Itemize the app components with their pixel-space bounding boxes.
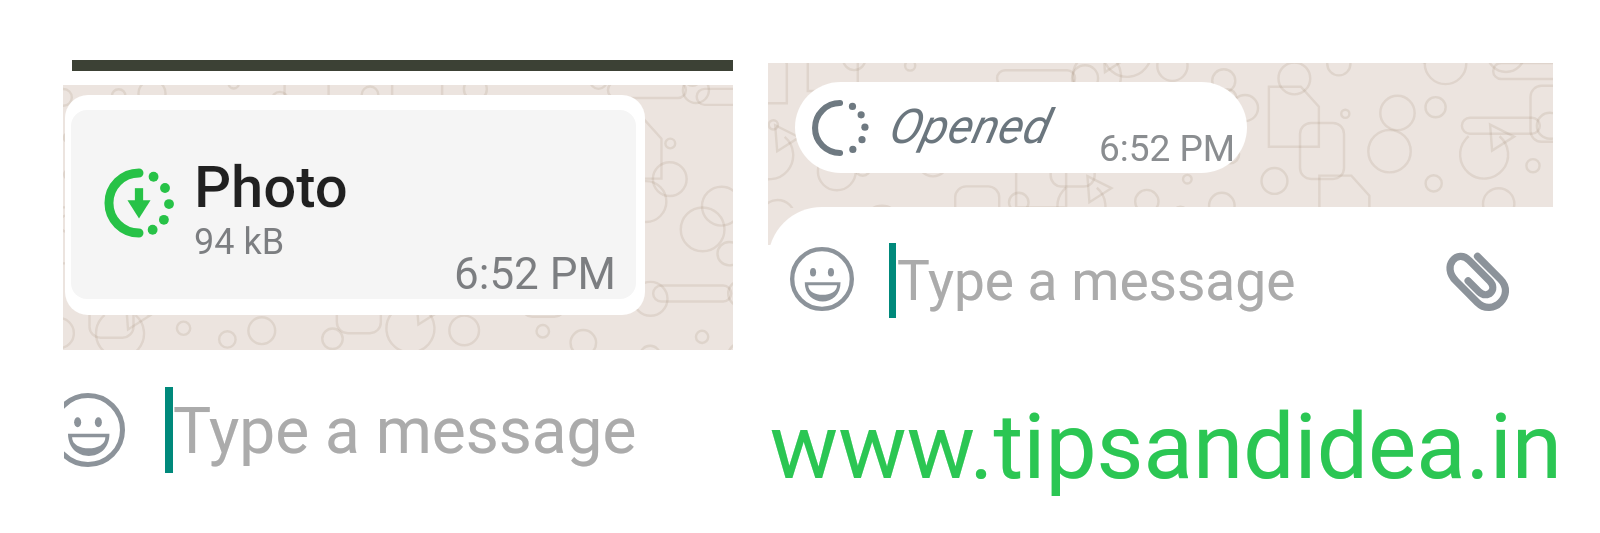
button[interactable]: Emoji: [790, 247, 854, 311]
staticText: Photo: [194, 153, 348, 221]
button[interactable]: Emoji: [64, 393, 125, 468]
button[interactable]: Opened: [795, 82, 1247, 173]
staticText: 6:52 PM: [1099, 127, 1236, 170]
staticText: 6:52 PM: [454, 248, 616, 299]
button[interactable]: Attach: [1443, 245, 1519, 321]
staticText: Opened: [887, 98, 1047, 154]
staticText: 94 kB: [194, 221, 285, 263]
staticText: Type a message: [897, 249, 1296, 313]
staticText: www.tipsandidea.in: [756, 394, 1576, 501]
staticText: Type a message: [173, 394, 637, 469]
button[interactable]: Photo: [65, 95, 645, 315]
